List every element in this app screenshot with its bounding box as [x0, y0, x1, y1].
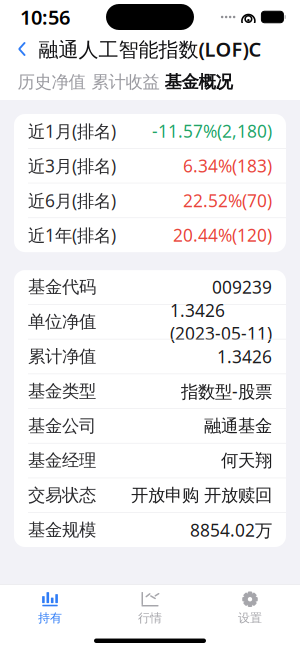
staticText: 何天翔: [221, 450, 272, 471]
staticText: 近1年(排名): [28, 224, 116, 247]
staticText: 交易状态: [28, 485, 96, 506]
staticText: 持有: [38, 611, 62, 625]
staticText: 融通人工智能指数(LOF)C: [38, 36, 261, 62]
staticText: 开放申购 开放赎回: [131, 485, 272, 506]
staticText: 单位净值: [28, 311, 96, 332]
staticText: 1.3426 (2023-05-11): [170, 299, 272, 345]
staticText: -11.57%(2,180): [152, 119, 272, 142]
staticText: 基金规模: [28, 519, 96, 541]
staticText: 10:56: [20, 4, 70, 30]
button[interactable]: 累计收益: [89, 71, 162, 93]
staticText: 20.44%(120): [173, 224, 272, 247]
staticText: 近1月(排名): [28, 119, 116, 142]
button[interactable]: 行情: [100, 584, 200, 629]
button[interactable]: 历史净值: [14, 71, 89, 93]
staticText: 行情: [138, 611, 162, 625]
staticText: 1.3426: [217, 345, 272, 368]
staticText: 8854.02万: [190, 518, 272, 541]
staticText: 设置: [238, 611, 262, 625]
staticText: 6.34%(183): [183, 154, 272, 177]
staticText: 基金类型: [28, 381, 96, 402]
button[interactable]: Back: [0, 34, 44, 64]
button[interactable]: 持有: [0, 584, 100, 629]
staticText: 009239: [212, 276, 272, 299]
staticText: 基金公司: [28, 415, 96, 437]
staticText: 融通基金: [204, 415, 272, 437]
button[interactable]: 设置: [200, 584, 300, 629]
staticText: 累计净值: [28, 346, 96, 367]
staticText: 近3月(排名): [28, 154, 116, 177]
staticText: 近6月(排名): [28, 189, 116, 212]
staticText: 累计收益: [91, 71, 159, 93]
staticText: 基金概况: [164, 71, 232, 93]
button[interactable]: 基金概况: [162, 71, 235, 93]
staticText: 22.52%(70): [183, 189, 272, 212]
staticText: 基金代码: [28, 276, 96, 298]
staticText: 基金经理: [28, 450, 96, 471]
staticText: 历史净值: [17, 71, 85, 93]
staticText: 指数型-股票: [181, 380, 272, 403]
